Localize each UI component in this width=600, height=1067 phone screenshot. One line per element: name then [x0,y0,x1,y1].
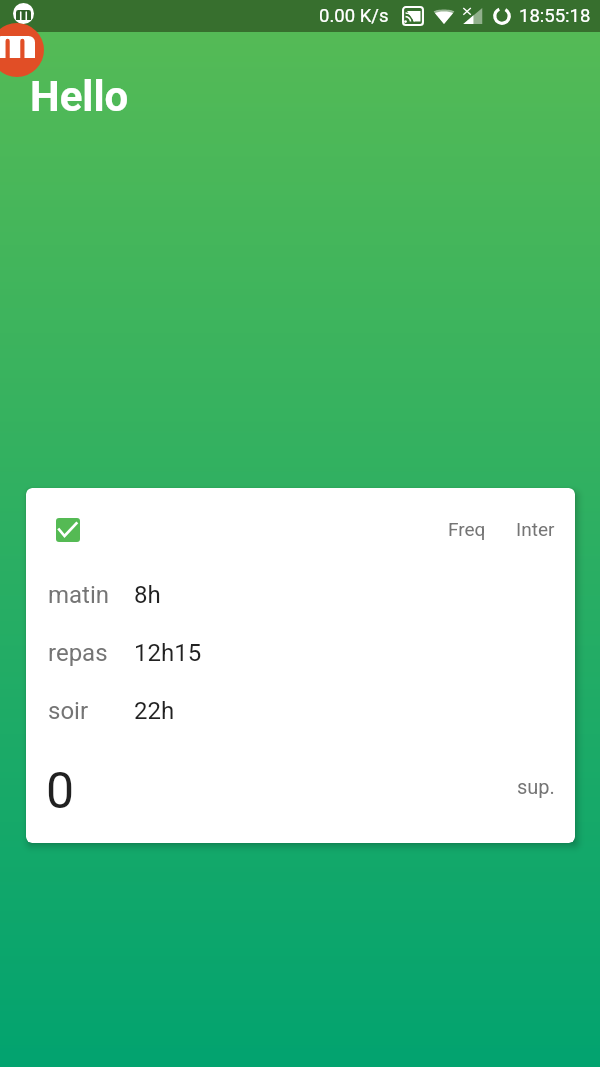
staticText: repas [48,639,134,667]
staticText: 0 [46,762,75,821]
staticText: 8h [134,581,161,609]
staticText: soir [48,697,134,725]
button[interactable]: sup. [507,767,565,806]
button[interactable]: Freq [438,508,496,550]
staticText: Inter [516,518,555,540]
other: App logo [0,23,44,77]
button[interactable]: matin [26,566,575,624]
staticText: 0.00 K/s [319,5,389,27]
staticText: matin [48,581,134,609]
staticText: 12h15 [134,639,202,667]
button[interactable]: Inter [506,508,565,550]
staticText: sup. [517,775,555,798]
button[interactable]: repas [26,624,575,682]
staticText: Freq [448,518,486,540]
staticText: 18:55:18 [519,5,591,27]
staticText: 22h [134,697,175,725]
button[interactable]: Enabled [56,518,80,542]
staticText: Hello [30,72,129,121]
button[interactable]: soir [26,682,575,740]
